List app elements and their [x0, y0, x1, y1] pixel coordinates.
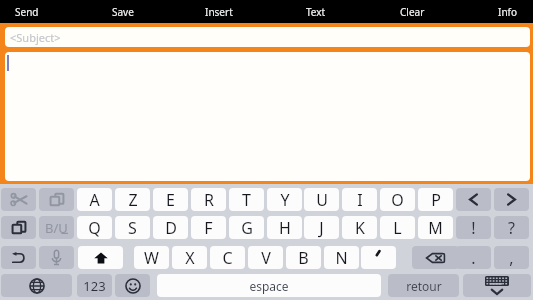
staticText: K: [355, 217, 365, 239]
button[interactable]: H: [267, 216, 302, 239]
button[interactable]: Y: [267, 188, 302, 211]
button[interactable]: Q: [77, 216, 112, 239]
button[interactable]: Cut: [1, 188, 36, 211]
button[interactable]: E: [153, 188, 188, 211]
staticText: H: [279, 217, 291, 239]
staticText: A: [89, 189, 100, 211]
staticText: L: [393, 217, 402, 239]
button[interactable]: Previous: [456, 188, 491, 211]
staticText: G: [241, 217, 253, 239]
button[interactable]: X: [172, 246, 207, 269]
staticText: retour: [406, 278, 442, 294]
button[interactable]: K: [342, 216, 377, 239]
button[interactable]: 123: [77, 274, 112, 297]
button[interactable]: I: [342, 188, 377, 211]
button[interactable]: Backspace: [412, 246, 459, 269]
button[interactable]: .: [456, 246, 491, 269]
staticText: R: [204, 189, 214, 211]
button[interactable]: T: [229, 188, 264, 211]
staticText: !: [471, 217, 476, 239]
staticText: Y: [280, 189, 290, 211]
staticText: V: [261, 247, 271, 269]
staticText: E: [166, 189, 175, 211]
button[interactable]: Text: [276, 0, 356, 23]
staticText: J: [319, 217, 324, 239]
button[interactable]: retour: [388, 274, 459, 297]
button[interactable]: Insert: [179, 0, 259, 23]
button[interactable]: <Subject>: [5, 27, 530, 47]
staticText: W: [144, 247, 159, 269]
staticText: ?: [508, 217, 515, 239]
button[interactable]: Clear: [372, 0, 452, 23]
button[interactable]: Next: [494, 188, 529, 211]
staticText: espace: [249, 278, 289, 294]
button[interactable]: G: [229, 216, 264, 239]
staticText: C: [222, 247, 233, 269]
button[interactable]: !: [456, 216, 491, 239]
button[interactable]: Change keyboard: [1, 274, 72, 297]
staticText: I: [357, 189, 363, 211]
button[interactable]: U: [304, 188, 339, 211]
button[interactable]: L: [380, 216, 415, 239]
button[interactable]: [5, 52, 530, 181]
staticText: M: [428, 217, 443, 239]
button[interactable]: Z: [115, 188, 150, 211]
button[interactable]: Bold / underline: [39, 216, 74, 239]
staticText: 123: [83, 277, 106, 295]
button[interactable]: Copy: [39, 188, 74, 211]
staticText: Send: [15, 5, 39, 19]
button[interactable]: espace: [157, 274, 381, 297]
staticText: F: [204, 217, 213, 239]
staticText: <Subject>: [10, 30, 61, 45]
staticText: S: [128, 217, 137, 239]
button[interactable]: R: [191, 188, 226, 211]
button[interactable]: Shift: [78, 246, 123, 269]
staticText: .: [471, 247, 476, 269]
staticText: X: [185, 247, 195, 269]
button[interactable]: V: [248, 246, 283, 269]
button[interactable]: M: [418, 216, 453, 239]
button[interactable]: Info: [468, 0, 533, 23]
staticText: D: [165, 217, 177, 239]
staticText: Save: [112, 5, 134, 19]
staticText: Clear: [400, 5, 425, 19]
button[interactable]: Hide keyboard: [463, 274, 531, 297]
staticText: B/U: [45, 219, 68, 237]
staticText: T: [242, 189, 251, 211]
staticText: Z: [128, 189, 138, 211]
staticText: Text: [306, 5, 326, 19]
button[interactable]: Undo: [1, 246, 36, 269]
button[interactable]: ?: [494, 216, 529, 239]
staticText: P: [431, 189, 441, 211]
button[interactable]: Save: [83, 0, 163, 23]
button[interactable]: Send: [0, 0, 67, 23]
button[interactable]: S: [115, 216, 150, 239]
staticText: ,: [509, 247, 514, 269]
staticText: B: [298, 247, 309, 269]
button[interactable]: A: [77, 188, 112, 211]
button[interactable]: B: [286, 246, 321, 269]
staticText: Q: [88, 217, 101, 239]
staticText: U: [316, 189, 328, 211]
button[interactable]: W: [134, 246, 169, 269]
button[interactable]: P: [418, 188, 453, 211]
button[interactable]: ,: [494, 246, 529, 269]
button[interactable]: O: [380, 188, 415, 211]
button[interactable]: Apostrophe: [361, 246, 396, 269]
staticText: Info: [498, 5, 518, 19]
staticText: N: [335, 247, 348, 269]
button[interactable]: Emoji: [115, 274, 150, 297]
button[interactable]: N: [324, 246, 359, 269]
button[interactable]: C: [210, 246, 245, 269]
button[interactable]: Voice input: [39, 246, 74, 269]
staticText: O: [391, 189, 404, 211]
staticText: Insert: [205, 5, 233, 19]
button[interactable]: D: [153, 216, 188, 239]
button[interactable]: Paste: [1, 216, 36, 239]
button[interactable]: J: [304, 216, 339, 239]
button[interactable]: F: [191, 216, 226, 239]
